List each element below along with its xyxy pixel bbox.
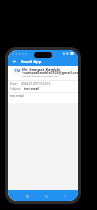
staticText: TM: [14, 68, 21, 74]
staticText: sampatkamble0103@gmail.com: [22, 74, 59, 77]
staticText: Subject:: [10, 87, 22, 91]
button[interactable]: Home: [42, 192, 51, 201]
staticText: Date:: [10, 82, 18, 86]
button[interactable]: Back: [8, 57, 21, 66]
staticText: test email: [24, 87, 39, 91]
staticText: Email App: [21, 59, 42, 65]
button[interactable]: Recent apps: [23, 192, 32, 201]
staticText: 2024-01-09T13:14:15: [21, 82, 51, 86]
staticText: Mr_Sampat Kamble: [22, 67, 61, 72]
button[interactable]: Back: [61, 192, 70, 201]
staticText: test email: [10, 94, 24, 98]
staticText: <sampatkamble0103@gmail.com>: [22, 70, 78, 75]
